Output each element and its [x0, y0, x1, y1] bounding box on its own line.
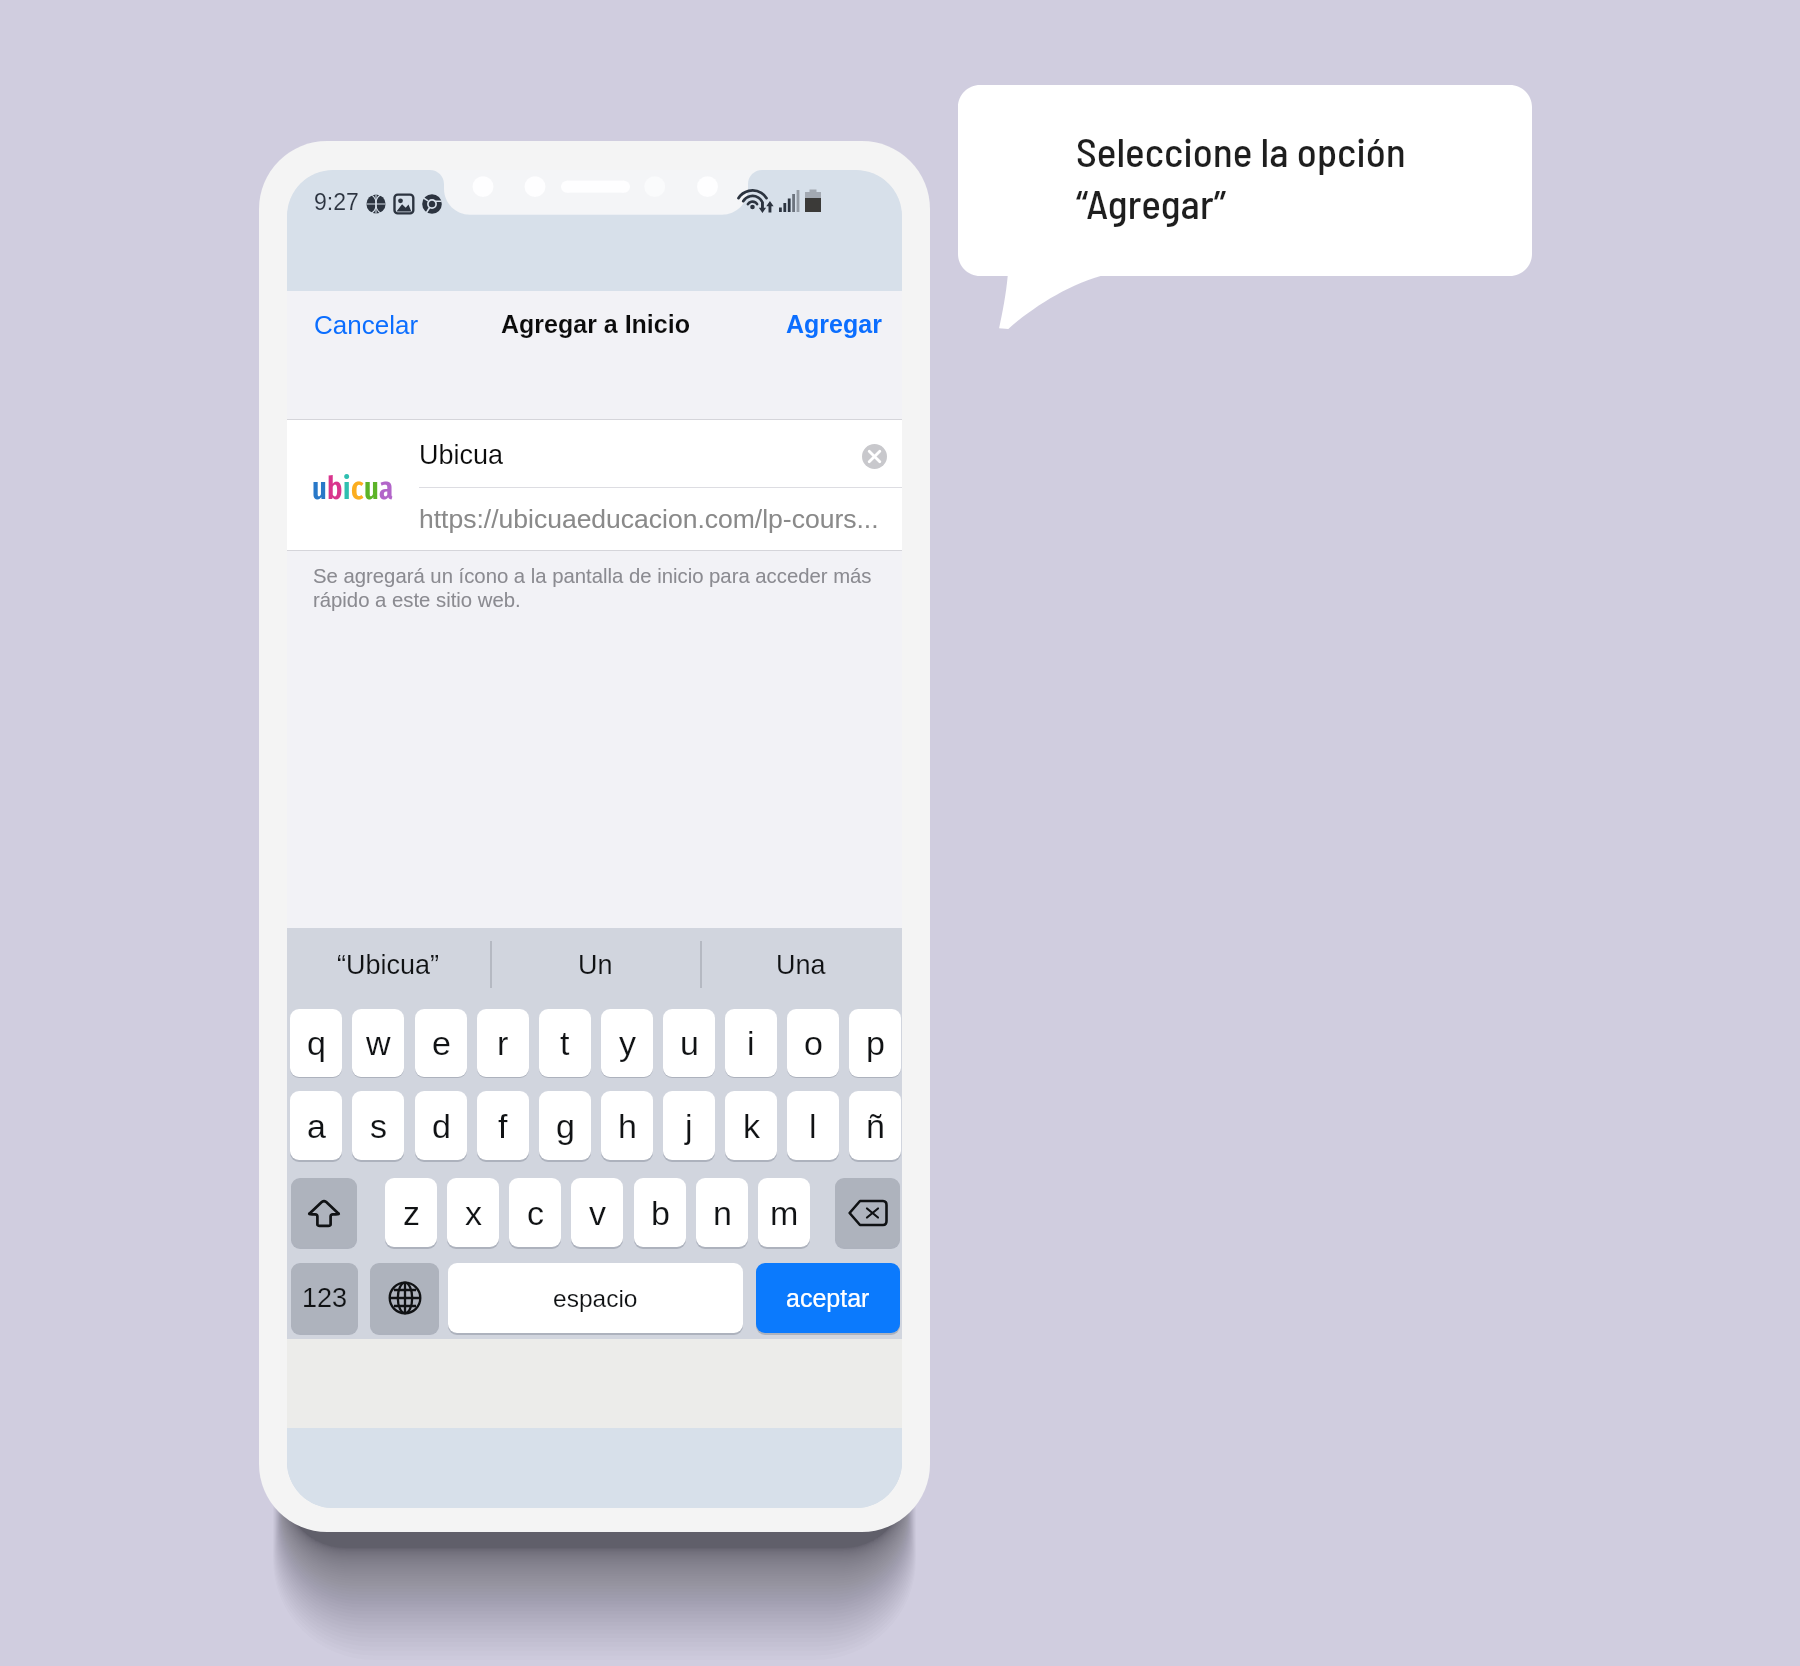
staticText: g	[556, 1107, 575, 1145]
button[interactable]: z	[385, 1178, 437, 1247]
other: Mayúsculas	[308, 1199, 340, 1227]
staticText: t	[560, 1024, 570, 1062]
staticText: z	[403, 1194, 420, 1232]
staticText: l	[809, 1107, 817, 1145]
staticText: Seleccione la opción “Agregar”	[1076, 126, 1406, 228]
button[interactable]: t	[539, 1009, 591, 1077]
staticText: d	[432, 1107, 451, 1145]
button[interactable]: ñ	[849, 1091, 901, 1160]
button[interactable]: m	[758, 1178, 810, 1247]
button[interactable]: k	[725, 1091, 777, 1160]
other: Retroceso	[848, 1199, 888, 1227]
staticText: v	[589, 1194, 606, 1232]
button[interactable]: r	[477, 1009, 529, 1077]
button[interactable]: Borrar texto	[862, 444, 887, 469]
button[interactable]: f	[477, 1091, 529, 1160]
button[interactable]: aceptar	[756, 1263, 900, 1333]
staticText: e	[432, 1024, 451, 1062]
button[interactable]: Agregar	[786, 310, 882, 338]
staticText: a	[307, 1107, 326, 1145]
staticText: b	[327, 470, 343, 507]
staticText: Se agregará un ícono a la pantalla de in…	[313, 565, 872, 612]
button[interactable]: Retroceso	[835, 1178, 900, 1247]
staticText: h	[618, 1107, 637, 1145]
staticText: https://ubicuaeducacion.com/lp-cours...	[419, 504, 879, 534]
staticText: n	[713, 1194, 732, 1232]
button[interactable]: i	[725, 1009, 777, 1077]
button[interactable]: “Ubicua”	[287, 928, 490, 1001]
staticText: 123	[302, 1283, 348, 1313]
staticText: u	[680, 1024, 699, 1062]
button[interactable]: Mayúsculas	[291, 1178, 357, 1247]
staticText: aceptar	[786, 1284, 870, 1312]
staticText: c	[351, 470, 364, 507]
staticText: w	[366, 1024, 391, 1062]
button[interactable]: j	[663, 1091, 715, 1160]
button[interactable]: w	[352, 1009, 404, 1077]
staticText: c	[527, 1194, 544, 1232]
button[interactable]: l	[787, 1091, 839, 1160]
staticText: j	[685, 1107, 693, 1145]
staticText: Agregar a Inicio	[501, 310, 690, 338]
staticText: b	[651, 1194, 670, 1232]
button[interactable]: o	[787, 1009, 839, 1077]
staticText: a	[379, 470, 394, 507]
button[interactable]: e	[415, 1009, 467, 1077]
staticText: Una	[776, 950, 826, 980]
button[interactable]: q	[290, 1009, 342, 1077]
staticText: u	[364, 470, 379, 507]
button[interactable]: n	[696, 1178, 748, 1247]
staticText: Agregar	[786, 310, 882, 338]
staticText: y	[619, 1024, 636, 1062]
staticText: u	[312, 470, 327, 507]
staticText: s	[370, 1107, 387, 1145]
button[interactable]: Una	[700, 928, 902, 1001]
button[interactable]: y	[601, 1009, 653, 1077]
staticText: q	[307, 1024, 326, 1062]
staticText: “Ubicua”	[337, 950, 440, 980]
staticText: i	[343, 470, 351, 507]
button[interactable]: Un	[490, 928, 700, 1001]
staticText: espacio	[553, 1285, 638, 1312]
button[interactable]: c	[509, 1178, 561, 1247]
staticText: Ubicua	[419, 440, 504, 470]
button[interactable]: Cambiar idioma	[370, 1263, 439, 1333]
button[interactable]: x	[447, 1178, 499, 1247]
button[interactable]: s	[352, 1091, 404, 1160]
button[interactable]: 123	[291, 1263, 358, 1333]
button[interactable]: g	[539, 1091, 591, 1160]
staticText: r	[497, 1024, 509, 1062]
staticText: Un	[578, 950, 613, 980]
button[interactable]: a	[290, 1091, 342, 1160]
other: Cambiar idioma	[389, 1282, 421, 1314]
button[interactable]: d	[415, 1091, 467, 1160]
staticText: p	[866, 1024, 885, 1062]
button[interactable]: espacio	[448, 1263, 743, 1333]
staticText: k	[743, 1107, 760, 1145]
staticText: m	[770, 1194, 799, 1232]
button[interactable]: u	[663, 1009, 715, 1077]
staticText: o	[804, 1024, 823, 1062]
button[interactable]: b	[634, 1178, 686, 1247]
staticText: f	[498, 1107, 508, 1145]
staticText: Cancelar	[314, 310, 419, 339]
staticText: ñ	[866, 1107, 885, 1145]
button[interactable]: h	[601, 1091, 653, 1160]
button[interactable]: v	[571, 1178, 623, 1247]
button[interactable]: p	[849, 1009, 901, 1077]
staticText: i	[747, 1024, 755, 1062]
staticText: x	[465, 1194, 482, 1232]
staticText: 9:27	[314, 189, 359, 215]
button[interactable]: Cancelar	[314, 310, 419, 339]
